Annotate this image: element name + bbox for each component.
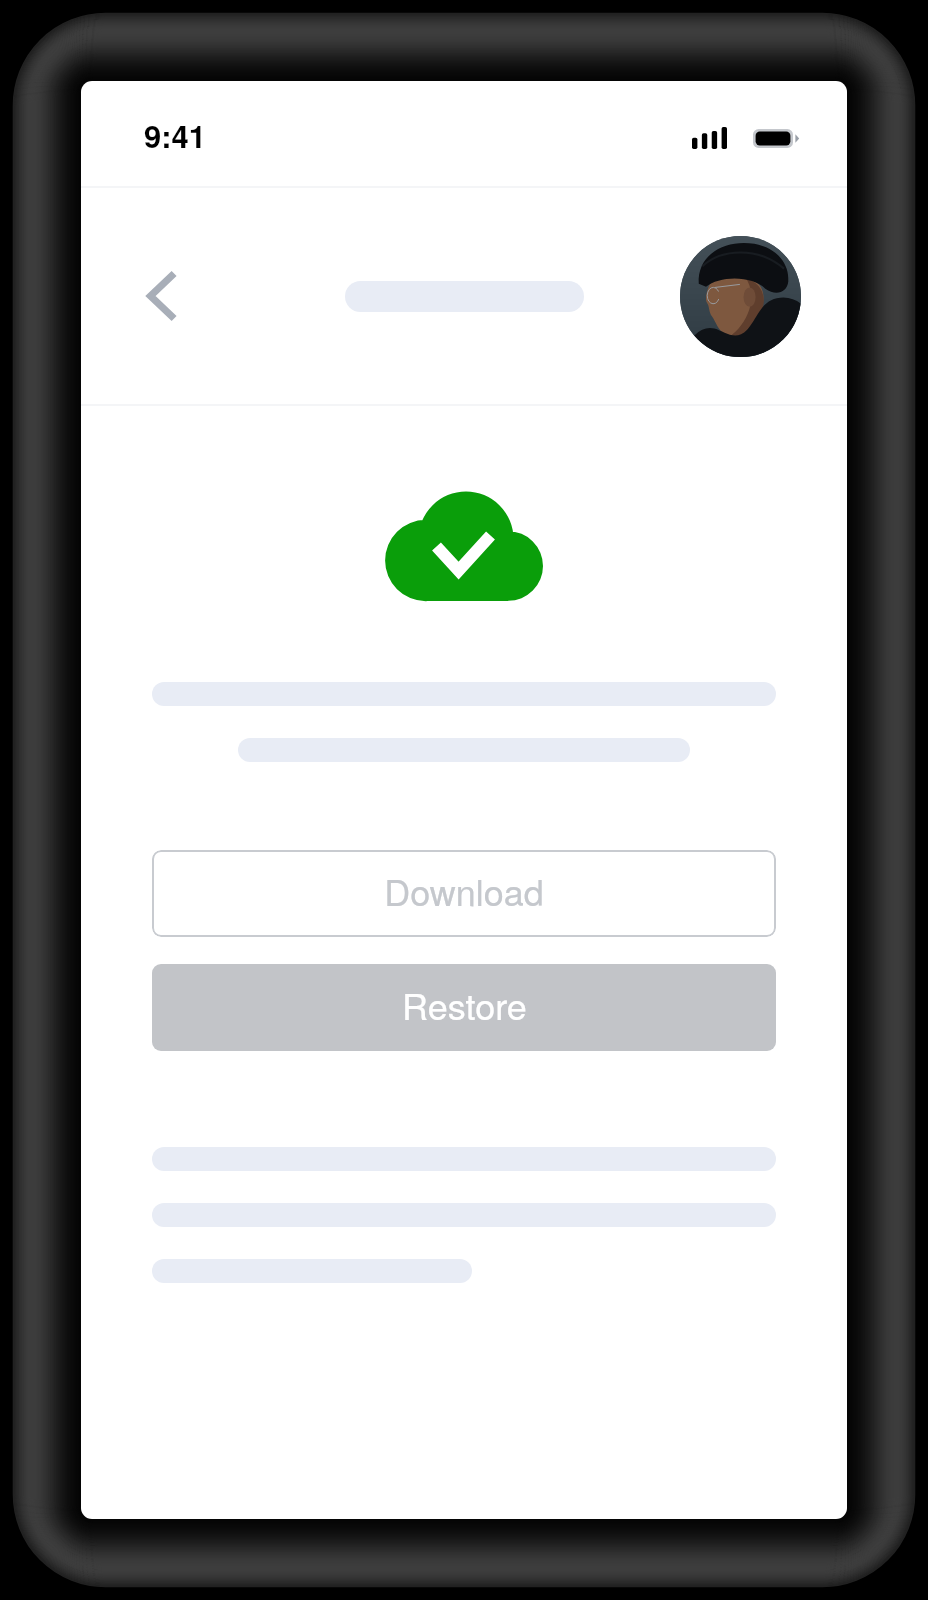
staticText: Download: [384, 865, 544, 917]
button[interactable]: Back: [125, 260, 197, 332]
button[interactable]: Restore: [152, 964, 776, 1051]
button[interactable]: Download: [152, 850, 776, 937]
staticText: 9:41: [144, 113, 207, 157]
staticText: Restore: [402, 979, 527, 1031]
button[interactable]: Profile: [680, 236, 801, 357]
